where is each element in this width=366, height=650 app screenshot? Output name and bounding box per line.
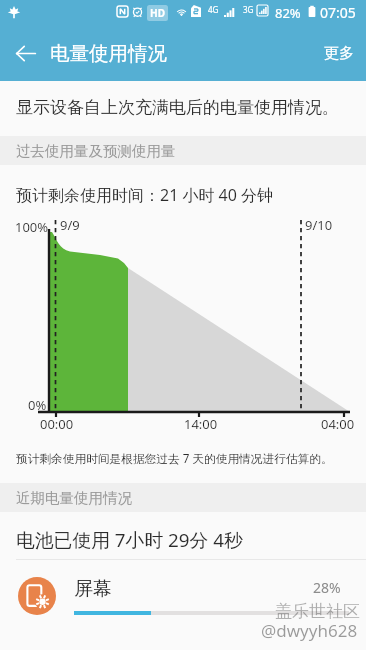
staticText: 14:00 bbox=[184, 415, 218, 433]
staticText: 盖乐世社区 bbox=[275, 601, 360, 622]
staticText: @dwyyh628 bbox=[261, 619, 358, 642]
staticText: 07:05 bbox=[320, 3, 356, 22]
staticText: 100% bbox=[15, 218, 49, 236]
staticText: 28% bbox=[313, 578, 341, 597]
staticText: 0% bbox=[28, 396, 47, 414]
staticText: 预计剩余使用时间是根据您过去 7 天的使用情况进行估算的。 bbox=[16, 450, 333, 466]
staticText: 电池已使用 7小时 29分 4秒 bbox=[16, 527, 243, 553]
staticText: 过去使用量及预测使用量 bbox=[16, 142, 176, 160]
staticText: 4G bbox=[208, 4, 219, 15]
staticText: 预计剩余使用时间：21 小时 40 分钟 bbox=[16, 184, 274, 206]
button[interactable]: 屏幕 bbox=[0, 560, 366, 632]
staticText: HD bbox=[150, 6, 165, 20]
staticText: 00:00 bbox=[40, 415, 74, 433]
button[interactable]: 更多 bbox=[312, 32, 366, 75]
button[interactable]: Back bbox=[0, 28, 50, 78]
staticText: 更多 bbox=[324, 44, 354, 63]
staticText: 电量使用情况 bbox=[50, 41, 167, 66]
staticText: 近期电量使用情况 bbox=[16, 489, 132, 507]
staticText: 屏幕 bbox=[74, 577, 112, 601]
staticText: 3G bbox=[243, 4, 254, 15]
staticText: 9/9 bbox=[60, 216, 80, 234]
staticText: 9/10 bbox=[305, 216, 333, 234]
staticText: 04:00 bbox=[321, 415, 355, 433]
staticText: 82% bbox=[275, 4, 301, 22]
staticText: 显示设备自上次充满电后的电量使用情况。 bbox=[16, 97, 339, 118]
